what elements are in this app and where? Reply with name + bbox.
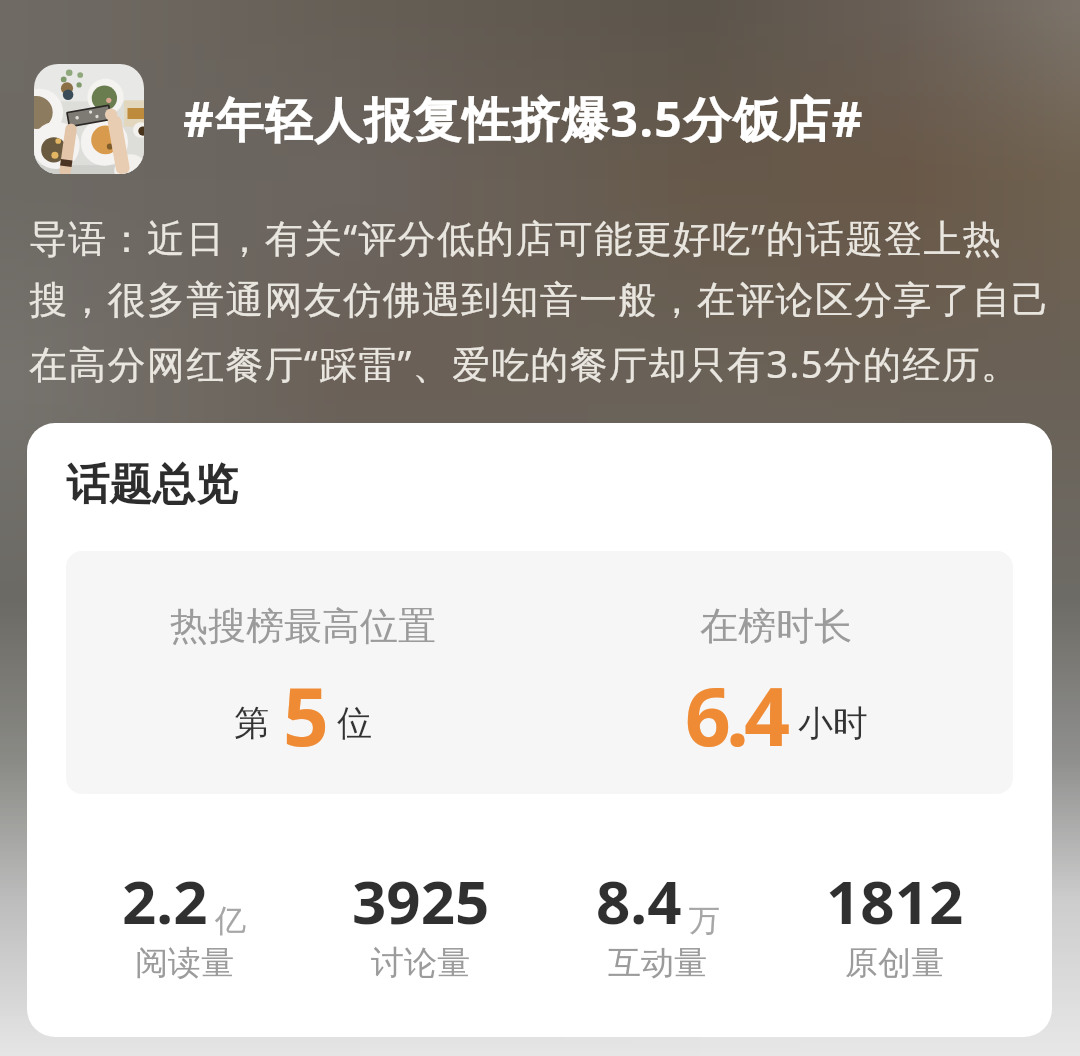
staticText: 2.2 <box>122 860 208 942</box>
button[interactable]: 在榜时长 <box>539 551 1013 794</box>
button[interactable]: 话题配图 <box>34 64 144 174</box>
staticText: 亿 <box>215 901 246 940</box>
staticText: 3925 <box>352 860 490 942</box>
staticText: 第 <box>234 701 269 745</box>
staticText: 1812 <box>826 860 964 942</box>
staticText: 5 <box>283 660 325 769</box>
staticText: 阅读量 <box>135 942 234 984</box>
staticText: 话题总览 <box>66 458 238 512</box>
button[interactable]: 2.2 <box>66 860 302 984</box>
staticText: 原创量 <box>845 942 944 984</box>
button[interactable]: 1812 <box>776 860 1013 984</box>
button[interactable]: 热搜榜最高位置 <box>66 551 539 794</box>
button[interactable]: 3925 <box>302 860 539 984</box>
staticText: 小时 <box>798 701 868 745</box>
staticText: 位 <box>337 701 372 745</box>
staticText: 万 <box>689 901 720 940</box>
staticText: 导语：近日，有关“评分低的店可能更好吃”的话题登上热 搜，很多普通网友仿佛遇到知… <box>29 211 1051 389</box>
staticText: 8.4 <box>596 860 682 942</box>
staticText: 互动量 <box>608 942 707 984</box>
staticText: 讨论量 <box>371 942 470 984</box>
button[interactable]: 8.4 <box>539 860 776 984</box>
staticText: 热搜榜最高位置 <box>170 602 436 650</box>
button[interactable]: #年轻人报复性挤爆3.5分饭店# <box>183 86 864 152</box>
staticText: 6.4 <box>685 660 786 769</box>
staticText: 在榜时长 <box>700 602 852 650</box>
